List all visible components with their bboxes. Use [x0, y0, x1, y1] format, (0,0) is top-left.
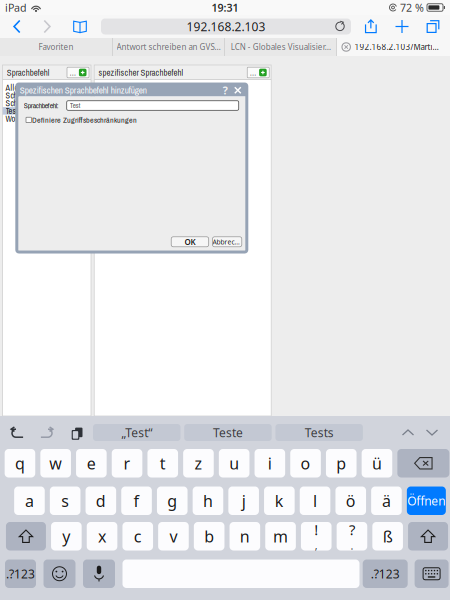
button[interactable]: ü [362, 449, 392, 477]
staticText: 192.168.2.103 [186, 18, 265, 34]
button[interactable]: Share [355, 15, 387, 38]
button[interactable]: Delete [397, 449, 449, 477]
button[interactable]: Tests [275, 424, 363, 441]
staticText: v [169, 526, 177, 547]
button[interactable]: Undo [3, 420, 32, 444]
staticText: Spezifischen Sprachbefehl hinzufügen [20, 84, 147, 96]
button[interactable]: .?123 [5, 559, 36, 588]
staticText: 19:31 [211, 0, 238, 15]
staticText: . [350, 538, 353, 553]
button[interactable]: x [87, 522, 117, 550]
button[interactable]: Forward [32, 15, 63, 38]
button[interactable]: Next field [420, 420, 444, 444]
button[interactable]: Neu [67, 67, 89, 78]
button[interactable]: i [254, 449, 285, 477]
button[interactable]: New Tab [387, 15, 417, 38]
button[interactable]: Shift [408, 522, 448, 550]
button[interactable]: g [157, 486, 187, 515]
staticText: z [194, 453, 202, 474]
button[interactable]: r [112, 449, 142, 477]
button[interactable]: ß [372, 522, 403, 550]
button[interactable]: m [265, 522, 296, 550]
button[interactable]: ö [335, 486, 366, 515]
button[interactable]: w [40, 449, 71, 477]
button[interactable]: z [183, 449, 214, 477]
staticText: Schl [5, 98, 19, 109]
button[interactable]: Test [2, 107, 91, 115]
button[interactable]: Abbrechen [212, 237, 242, 247]
staticText: Tests [305, 424, 334, 440]
button[interactable]: Bookmarks [63, 15, 97, 38]
button[interactable]: OK [171, 237, 209, 247]
button[interactable]: Show Tabs [417, 15, 449, 38]
button[interactable]: Emoji [43, 559, 75, 588]
button[interactable]: Favoriten [0, 38, 112, 56]
button[interactable]: n [230, 522, 260, 550]
button[interactable]: k [264, 486, 295, 515]
button[interactable]: „Test“ [93, 424, 180, 441]
button[interactable]: Teste [184, 424, 272, 441]
staticText: Antwort schreiben an GVS… [116, 42, 220, 52]
button[interactable]: Hide Keyboard [415, 559, 449, 588]
staticText: Schl [5, 90, 19, 101]
button[interactable]: d [85, 486, 116, 515]
button[interactable]: Schl [2, 92, 91, 99]
staticText: u [229, 453, 239, 474]
staticText: „Test“ [121, 424, 152, 440]
button[interactable]: Reload [332, 18, 348, 34]
button[interactable]: Dictation [83, 559, 115, 588]
staticText: ? [349, 520, 355, 539]
button[interactable]: Alle [2, 84, 91, 92]
button[interactable]: y [51, 522, 82, 550]
button[interactable]: Neu [247, 67, 269, 78]
button[interactable]: Paste [61, 420, 90, 444]
button[interactable]: ä [371, 486, 402, 515]
button[interactable]: f [121, 486, 152, 515]
button[interactable]: LCN - Globales Visualisier… [225, 38, 336, 56]
button[interactable]: ! [301, 522, 331, 550]
button[interactable]: Antwort schreiben an GVS… [112, 38, 224, 56]
staticText: Sprachbefehl [7, 67, 50, 78]
staticText: , [315, 538, 318, 553]
button[interactable]: Öffnen [407, 486, 446, 515]
button[interactable]: ? [337, 522, 367, 550]
button[interactable]: q [5, 449, 35, 477]
button[interactable]: Shift [6, 522, 46, 550]
button[interactable]: c [122, 522, 153, 550]
button[interactable]: u [219, 449, 249, 477]
button[interactable]: l [300, 486, 330, 515]
button[interactable]: j [228, 486, 259, 515]
button[interactable]: b [194, 522, 224, 550]
staticText: Neu [69, 67, 77, 78]
button[interactable]: a [14, 486, 45, 515]
staticText: Test [5, 105, 17, 116]
button[interactable]: v [158, 522, 189, 550]
staticText: Neu [250, 67, 257, 78]
button[interactable]: Help [220, 84, 231, 96]
button[interactable]: Back [1, 15, 32, 38]
button[interactable]: Definiere Zugriffsbeschränkungen [26, 117, 31, 123]
button[interactable]: Schl [2, 99, 91, 107]
button[interactable]: Woh [2, 115, 91, 122]
button[interactable]: Previous field [396, 420, 420, 444]
button[interactable]: Redo [32, 420, 61, 444]
button[interactable]: 192.168.2.103/Martin/L… [337, 38, 450, 56]
staticText: j [242, 490, 246, 511]
button[interactable]: s [50, 486, 80, 515]
staticText: y [62, 526, 70, 547]
button[interactable]: p [326, 449, 356, 477]
staticText: Test [70, 101, 81, 110]
staticText: w [49, 453, 62, 474]
button[interactable]: o [290, 449, 321, 477]
staticText: Woh [5, 113, 19, 124]
button[interactable]: t [147, 449, 178, 477]
staticText: t [160, 453, 166, 474]
button[interactable]: .?123 [363, 559, 408, 588]
button[interactable]: e [76, 449, 107, 477]
button[interactable]: Close [231, 84, 245, 96]
staticText: ä [382, 490, 391, 511]
button[interactable]: h [193, 486, 223, 515]
staticText: Teste [213, 424, 243, 440]
staticText: m [273, 526, 288, 547]
